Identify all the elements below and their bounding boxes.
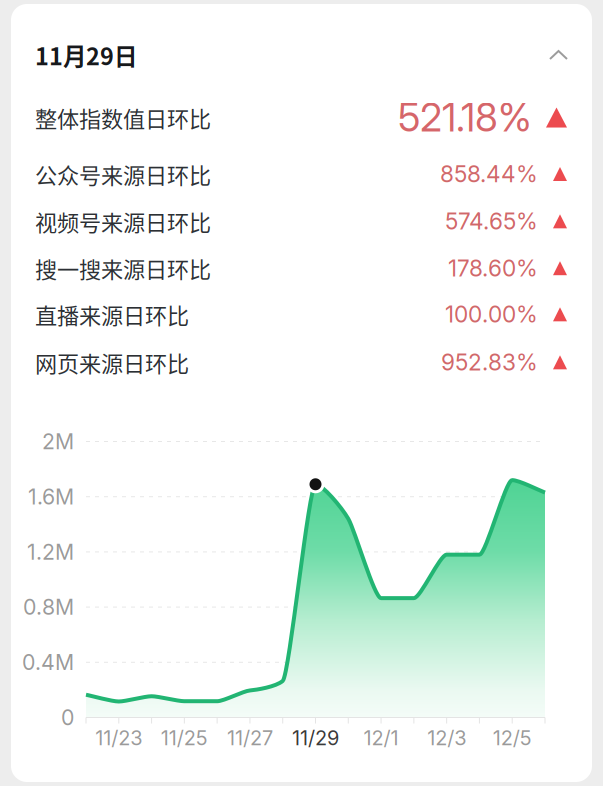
staticText: 12/5 [493,726,532,750]
staticText: 整体指数值日环比 [35,101,211,133]
staticText: 574.65% [445,208,538,235]
staticText: 0.4M [22,649,74,675]
staticText: 11/27 [227,726,273,750]
button[interactable]: 11月29日，收起 [0,7,603,103]
staticText: 直播来源日环比 [35,298,189,330]
button[interactable]: 网页来源日环比 [0,339,603,386]
staticText: 2M [42,429,74,454]
staticText: 视频号来源日环比 [35,205,211,237]
staticText: 搜一搜来源日环比 [35,252,211,284]
button[interactable]: 直播来源日环比 [0,291,603,338]
staticText: 0 [61,705,74,730]
staticText: 12/1 [364,726,399,750]
button[interactable]: 视频号来源日环比 [0,198,603,245]
staticText: 公众号来源日环比 [35,158,211,190]
button[interactable]: 整体指数值日环比 [0,89,603,145]
staticText: 网页来源日环比 [35,346,189,378]
staticText: 12/3 [427,726,466,750]
staticText: 11/23 [95,726,142,750]
staticText: 1.2M [27,539,74,565]
staticText: 1.6M [28,484,74,510]
staticText: 11月29日 [35,38,137,72]
button[interactable]: 公众号来源日环比 [0,150,603,197]
staticText: 100.00% [445,301,538,328]
button[interactable]: 搜一搜来源日环比 [0,245,603,292]
staticText: 952.83% [441,349,538,376]
staticText: 11/29 [292,726,339,750]
staticText: 178.60% [448,254,538,282]
staticText: 11/25 [161,726,208,750]
staticText: 521.18% [398,94,532,141]
staticText: 0.8M [23,594,74,620]
staticText: 858.44% [440,160,538,188]
